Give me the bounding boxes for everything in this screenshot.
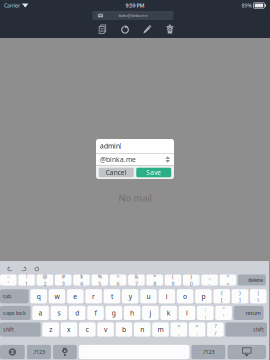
button[interactable]: #: [55, 274, 71, 285]
button[interactable]: k: [160, 306, 177, 320]
button[interactable]: shift: [225, 322, 267, 337]
staticText: _: [209, 273, 211, 280]
button[interactable]: c: [79, 322, 96, 337]
staticText: (: [172, 273, 174, 280]
staticText: *: [153, 273, 156, 280]
button[interactable]: +: [220, 274, 236, 285]
button[interactable]: v: [97, 322, 114, 337]
button[interactable]: &: [128, 274, 145, 285]
staticText: Save: [146, 168, 161, 177]
button[interactable]: x: [61, 322, 77, 337]
button[interactable]: <: [170, 322, 187, 337]
button[interactable]: t: [104, 289, 120, 303]
button[interactable]: j: [142, 306, 159, 320]
button[interactable]: @: [37, 274, 53, 285]
staticText: @binka.me: [100, 155, 136, 164]
staticText: caps lock: [3, 309, 26, 316]
button[interactable]: Archive: [91, 23, 114, 35]
button[interactable]: Save: [136, 168, 171, 177]
staticText: return: [246, 309, 261, 316]
button[interactable]: l: [179, 306, 195, 320]
button[interactable]: g: [105, 306, 122, 320]
button[interactable]: .?123: [27, 345, 51, 359]
button[interactable]: e: [67, 289, 84, 303]
button[interactable]: m: [152, 322, 169, 337]
staticText: d: [75, 308, 79, 317]
staticText: b: [122, 325, 126, 334]
staticText: +: [226, 273, 229, 280]
button[interactable]: delete: [238, 274, 266, 285]
button[interactable]: u: [140, 289, 157, 303]
button[interactable]: Reload: [30, 263, 43, 274]
button[interactable]: Undo: [4, 263, 17, 274]
button[interactable]: Cancel: [99, 168, 134, 177]
button[interactable]: return: [234, 306, 264, 320]
staticText: :: [205, 306, 206, 313]
button[interactable]: tab: [0, 289, 29, 303]
button[interactable]: p: [195, 289, 212, 303]
staticText: o: [183, 292, 187, 301]
button[interactable]: ?: [207, 322, 224, 337]
staticText: 2: [43, 280, 46, 287]
button[interactable]: f: [87, 306, 104, 320]
button[interactable]: h: [124, 306, 140, 320]
button[interactable]: !: [18, 274, 35, 285]
button[interactable]: ": [215, 306, 232, 320]
button[interactable]: r: [85, 289, 102, 303]
button[interactable]: (: [165, 274, 181, 285]
button[interactable]: Redo: [17, 263, 30, 274]
staticText: ): [190, 273, 192, 280]
staticText: shift: [3, 326, 14, 333]
button[interactable]: :: [197, 306, 214, 320]
button[interactable]: }: [232, 289, 248, 303]
button[interactable]: b: [116, 322, 132, 337]
staticText: n: [140, 325, 144, 334]
staticText: .: [197, 330, 198, 337]
staticText: 9:59 PM: [125, 2, 144, 9]
staticText: 9: [171, 280, 174, 287]
button[interactable]: Delete: [159, 23, 181, 35]
staticText: 6: [117, 280, 120, 287]
button[interactable]: caps lock: [0, 306, 31, 320]
button[interactable]: d: [69, 306, 85, 320]
button[interactable]: o: [177, 289, 193, 303]
staticText: j: [149, 308, 151, 317]
button[interactable]: y: [122, 289, 138, 303]
staticText: 4: [80, 280, 83, 287]
staticText: a: [39, 308, 43, 317]
button[interactable]: w: [49, 289, 65, 303]
button[interactable]: ): [183, 274, 200, 285]
button[interactable]: *: [146, 274, 163, 285]
button[interactable]: i: [158, 289, 175, 303]
button[interactable]: Emoji: [0, 345, 25, 359]
button[interactable]: Refresh: [114, 23, 136, 35]
staticText: -: [209, 280, 211, 287]
staticText: 1: [25, 280, 28, 287]
button[interactable]: $: [73, 274, 90, 285]
staticText: [: [221, 296, 223, 303]
button[interactable]: .?123: [191, 345, 225, 359]
button[interactable]: tkdev@binka.me: [92, 11, 173, 20]
button[interactable]: Dictate: [53, 345, 77, 359]
button[interactable]: a: [32, 306, 49, 320]
button[interactable]: Hide Keyboard: [227, 345, 266, 359]
button[interactable]: >: [189, 322, 205, 337]
button[interactable]: s: [51, 306, 67, 320]
button[interactable]: _: [201, 274, 218, 285]
staticText: >: [196, 322, 199, 329]
button[interactable]: z: [42, 322, 59, 337]
staticText: .?123: [33, 348, 45, 356]
button[interactable]: q: [30, 289, 47, 303]
button[interactable]: |: [250, 289, 267, 303]
staticText: tkdev@binka.me: [118, 13, 147, 18]
button[interactable]: {: [213, 289, 230, 303]
button[interactable]: Compose: [136, 23, 159, 35]
button[interactable]: shift: [0, 322, 41, 337]
staticText: #: [62, 273, 65, 280]
button[interactable]: ~: [0, 274, 17, 285]
button[interactable]: n: [134, 322, 150, 337]
staticText: !: [26, 273, 27, 280]
button[interactable]: %: [91, 274, 108, 285]
button[interactable]: ^: [110, 274, 126, 285]
